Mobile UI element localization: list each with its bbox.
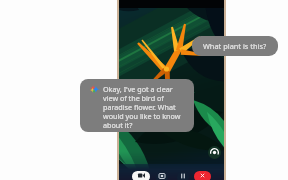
- staticText: What plant is this?: [203, 41, 267, 51]
- button[interactable]: What plant is this?: [192, 36, 278, 56]
- button[interactable]: Okay, I've got a clear view of the bird …: [80, 79, 194, 132]
- button[interactable]: Switch camera: [208, 146, 221, 159]
- button[interactable]: End session: [194, 171, 211, 180]
- button[interactable]: Share screen: [156, 171, 168, 180]
- staticText: Okay, I've got a clear view of the bird …: [103, 84, 187, 130]
- button[interactable]: Pause: [177, 171, 189, 180]
- button[interactable]: Camera: [132, 171, 150, 180]
